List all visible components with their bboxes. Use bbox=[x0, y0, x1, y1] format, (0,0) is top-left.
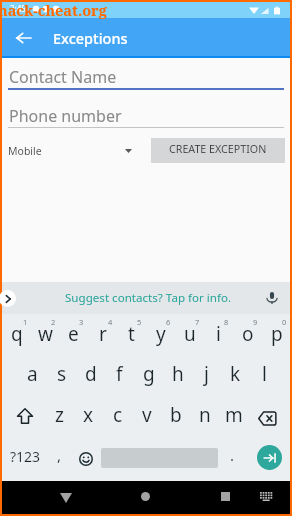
staticText: 1 bbox=[23, 317, 28, 327]
staticText: Contact Name bbox=[9, 66, 117, 85]
button[interactable]: y bbox=[145, 314, 174, 356]
staticText: Mobile bbox=[8, 144, 42, 158]
staticText: e bbox=[68, 321, 79, 347]
staticText: r bbox=[99, 321, 107, 347]
button[interactable]: ?123 bbox=[2, 438, 46, 481]
button[interactable]: m bbox=[218, 397, 247, 438]
staticText: f bbox=[116, 361, 123, 387]
button[interactable]: More suggestions bbox=[0, 290, 16, 307]
staticText: w bbox=[38, 321, 53, 347]
button[interactable]: u bbox=[174, 314, 203, 356]
button[interactable]: a bbox=[15, 356, 44, 397]
button[interactable]: CREATE EXCEPTION bbox=[151, 138, 285, 163]
button[interactable]: s bbox=[44, 356, 73, 397]
button[interactable]: f bbox=[102, 356, 131, 397]
staticText: Phone number bbox=[9, 105, 122, 124]
staticText: ?123 bbox=[10, 447, 41, 466]
staticText: Suggest contacts? Tap for info. bbox=[65, 290, 232, 306]
staticText: . bbox=[230, 445, 235, 465]
staticText: q bbox=[11, 321, 23, 347]
staticText: v bbox=[142, 402, 152, 428]
staticText: 7 bbox=[195, 317, 200, 327]
button[interactable]: . bbox=[217, 438, 244, 481]
staticText: b bbox=[170, 402, 182, 428]
button[interactable]: g bbox=[131, 356, 160, 397]
button[interactable]: Shift bbox=[2, 397, 44, 438]
button[interactable]: q bbox=[2, 314, 30, 356]
button[interactable]: k bbox=[218, 356, 247, 397]
button[interactable]: Back bbox=[6, 21, 40, 55]
staticText: Exceptions bbox=[53, 28, 128, 48]
staticText: s bbox=[57, 361, 67, 387]
button[interactable]: Back bbox=[47, 481, 85, 514]
button[interactable]: Voice input bbox=[262, 288, 282, 308]
staticText: h bbox=[172, 361, 184, 387]
staticText: o bbox=[242, 321, 254, 347]
button[interactable]: p bbox=[261, 314, 290, 356]
staticText: 8 bbox=[224, 317, 229, 327]
button[interactable]: t bbox=[116, 314, 145, 356]
staticText: CREATE EXCEPTION bbox=[169, 142, 267, 157]
button[interactable]: j bbox=[189, 356, 218, 397]
button[interactable]: c bbox=[102, 397, 131, 438]
staticText: c bbox=[113, 402, 123, 428]
staticText: 2 bbox=[51, 317, 56, 327]
staticText: 0 bbox=[282, 317, 287, 327]
button[interactable]: Recents bbox=[206, 481, 244, 514]
staticText: hack-cheat.org bbox=[0, 0, 107, 20]
staticText: t bbox=[128, 321, 135, 347]
staticText: 4 bbox=[108, 317, 113, 327]
staticText: p bbox=[271, 321, 283, 347]
button[interactable]: d bbox=[73, 356, 102, 397]
button[interactable]: Send bbox=[244, 438, 290, 481]
button[interactable]: i bbox=[203, 314, 232, 356]
button[interactable]: o bbox=[232, 314, 261, 356]
staticText: 9 bbox=[253, 317, 258, 327]
button[interactable]: l bbox=[247, 356, 276, 397]
staticText: 3:45 bbox=[10, 3, 26, 14]
button[interactable]: Emoji bbox=[73, 438, 100, 481]
button[interactable]: Mobile bbox=[8, 138, 138, 163]
button[interactable]: h bbox=[160, 356, 189, 397]
staticText: y bbox=[156, 321, 166, 347]
staticText: u bbox=[184, 321, 196, 347]
button[interactable]: , bbox=[46, 438, 73, 481]
staticText: 6 bbox=[166, 317, 171, 327]
button[interactable]: e bbox=[58, 314, 87, 356]
button[interactable]: n bbox=[189, 397, 218, 438]
button[interactable]: b bbox=[160, 397, 189, 438]
button[interactable]: z bbox=[44, 397, 73, 438]
button[interactable]: w bbox=[30, 314, 58, 356]
staticText: j bbox=[204, 361, 209, 387]
staticText: k bbox=[230, 361, 241, 387]
staticText: i bbox=[216, 321, 221, 347]
staticText: n bbox=[199, 402, 211, 428]
staticText: x bbox=[83, 402, 94, 428]
staticText: 5 bbox=[137, 317, 142, 327]
staticText: , bbox=[57, 445, 62, 465]
button[interactable]: Hide keyboard bbox=[250, 481, 282, 514]
staticText: a bbox=[27, 361, 38, 387]
staticText: m bbox=[225, 402, 243, 428]
button[interactable]: r bbox=[87, 314, 116, 356]
button[interactable]: x bbox=[73, 397, 102, 438]
button[interactable]: Backspace bbox=[247, 397, 290, 438]
button[interactable]: Home bbox=[126, 481, 164, 514]
button[interactable] bbox=[100, 438, 217, 481]
staticText: d bbox=[85, 361, 97, 387]
staticText: l bbox=[262, 361, 267, 387]
button[interactable]: v bbox=[131, 397, 160, 438]
staticText: z bbox=[55, 402, 64, 428]
staticText: 3 bbox=[79, 317, 84, 327]
staticText: g bbox=[143, 361, 155, 387]
